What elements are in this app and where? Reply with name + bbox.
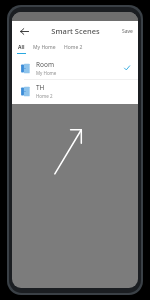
button[interactable]: My Home [32,43,57,52]
staticText: Home 2 [36,93,53,99]
button[interactable]: All [17,43,26,52]
button[interactable]: Home 2 [63,43,84,52]
staticText: All [18,44,25,51]
button[interactable]: Back [16,23,32,39]
staticText: Smart Scenes [51,26,100,36]
staticText: Save [122,28,133,35]
button[interactable]: TH [12,80,138,102]
button[interactable]: Save [122,28,133,35]
staticText: My Home [33,44,56,51]
staticText: Home 2 [64,44,83,51]
staticText: TH [36,83,45,92]
staticText: Room [36,60,54,69]
button[interactable]: Room [12,57,138,79]
staticText: My Home [36,70,57,76]
